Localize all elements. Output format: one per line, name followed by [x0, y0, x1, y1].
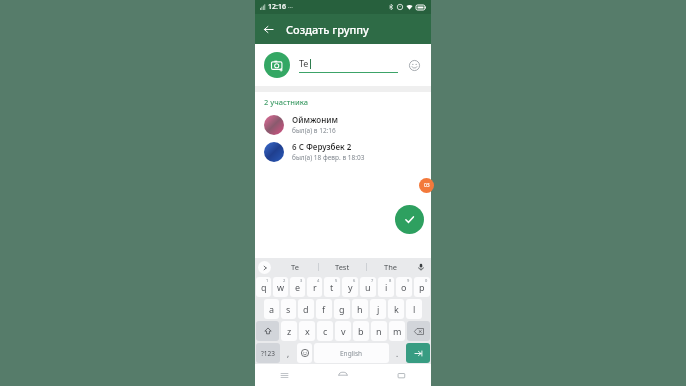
button[interactable]: Недавние: [255, 364, 313, 386]
button[interactable]: Добавить фото: [264, 52, 290, 78]
button[interactable]: d: [298, 299, 314, 319]
button[interactable]: .: [391, 343, 404, 363]
button[interactable]: Создать: [395, 205, 424, 234]
staticText: e: [295, 281, 301, 293]
staticText: z: [287, 325, 292, 337]
staticText: c: [323, 325, 328, 337]
button[interactable]: Назад: [372, 364, 431, 386]
button[interactable]: n: [371, 321, 387, 341]
staticText: k: [394, 303, 399, 315]
staticText: j: [377, 303, 380, 315]
staticText: b: [358, 325, 364, 337]
button[interactable]: u: [360, 277, 376, 297]
staticText: d: [303, 303, 309, 315]
staticText: 0: [425, 278, 428, 283]
staticText: t: [330, 281, 334, 293]
staticText: o: [401, 281, 407, 293]
staticText: v: [341, 325, 346, 337]
staticText: 4: [317, 278, 320, 283]
staticText: был(а) в 12:16: [292, 126, 336, 135]
button[interactable]: b: [353, 321, 369, 341]
staticText: 2: [283, 278, 286, 283]
button[interactable]: English: [314, 343, 389, 363]
staticText: English: [340, 349, 363, 358]
button[interactable]: v: [335, 321, 351, 341]
button[interactable]: g: [334, 299, 350, 319]
staticText: l: [413, 303, 416, 315]
button[interactable]: h: [352, 299, 368, 319]
button[interactable]: z: [281, 321, 297, 341]
button[interactable]: r: [307, 277, 322, 297]
button[interactable]: o: [396, 277, 412, 297]
staticText: a: [269, 303, 275, 315]
button[interactable]: Оймжоним: [255, 111, 431, 138]
staticText: ?123: [261, 349, 275, 358]
button[interactable]: Shift: [256, 321, 279, 341]
button[interactable]: y: [342, 277, 358, 297]
button[interactable]: q: [256, 277, 271, 297]
button[interactable]: Эмодзи: [406, 57, 422, 73]
button[interactable]: l: [406, 299, 422, 319]
button[interactable]: The: [367, 258, 414, 276]
staticText: r: [313, 281, 317, 293]
staticText: 9: [407, 278, 410, 283]
staticText: Te: [299, 57, 309, 69]
button[interactable]: Голосовой ввод: [414, 258, 428, 276]
button[interactable]: f: [316, 299, 332, 319]
staticText: 6: [353, 278, 356, 283]
button[interactable]: Ввод: [406, 343, 430, 363]
button[interactable]: s: [281, 299, 296, 319]
staticText: ,: [287, 348, 290, 359]
staticText: g: [339, 303, 345, 315]
button[interactable]: Удалить: [407, 321, 430, 341]
button[interactable]: w: [273, 277, 288, 297]
staticText: 6 С Ферузбек 2: [292, 141, 352, 152]
staticText: 3: [300, 278, 303, 283]
button[interactable]: t: [324, 277, 340, 297]
staticText: m: [393, 325, 402, 337]
staticText: 2 участника: [264, 97, 309, 107]
staticText: i: [385, 281, 388, 293]
button[interactable]: i: [378, 277, 394, 297]
staticText: 12:16: [268, 2, 286, 12]
button[interactable]: Главный экран: [313, 364, 372, 386]
staticText: .: [396, 348, 399, 359]
staticText: h: [357, 303, 363, 315]
staticText: The: [384, 262, 398, 272]
button[interactable]: Test: [319, 258, 366, 276]
button[interactable]: a: [264, 299, 279, 319]
staticText: n: [376, 325, 382, 337]
staticText: 03: [424, 182, 430, 189]
button[interactable]: ?123: [256, 343, 280, 363]
staticText: 1: [266, 278, 269, 283]
button[interactable]: 6 С Ферузбек 2: [255, 138, 431, 165]
button[interactable]: m: [389, 321, 405, 341]
staticText: x: [305, 325, 310, 337]
button[interactable]: Ещё: [258, 261, 271, 274]
staticText: y: [348, 281, 353, 293]
button[interactable]: Назад: [255, 16, 281, 42]
staticText: был(а) 18 февр. в 18:03: [292, 153, 365, 162]
button[interactable]: Эмодзи: [297, 343, 312, 363]
staticText: Создать группу: [286, 22, 369, 37]
staticText: q: [261, 281, 267, 293]
button[interactable]: j: [370, 299, 386, 319]
staticText: s: [286, 303, 291, 315]
button[interactable]: Te: [271, 258, 318, 276]
button[interactable]: c: [317, 321, 333, 341]
staticText: u: [365, 281, 371, 293]
staticText: w: [277, 281, 285, 293]
button[interactable]: k: [388, 299, 404, 319]
button[interactable]: e: [290, 277, 305, 297]
staticText: Оймжоним: [292, 114, 339, 125]
staticText: f: [322, 303, 326, 315]
button[interactable]: x: [299, 321, 315, 341]
staticText: 5: [335, 278, 338, 283]
button[interactable]: ,: [282, 343, 295, 363]
button[interactable]: p: [414, 277, 430, 297]
staticText: Test: [335, 262, 350, 272]
staticText: p: [419, 281, 425, 293]
staticText: ···: [288, 3, 293, 11]
staticText: 7: [371, 278, 374, 283]
staticText: 8: [389, 278, 392, 283]
